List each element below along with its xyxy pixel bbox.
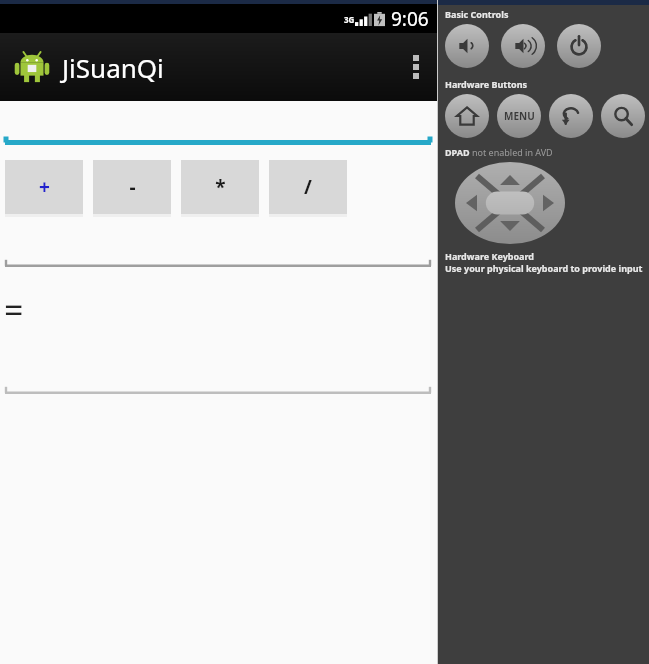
button[interactable]: - xyxy=(93,160,171,214)
staticText: - xyxy=(129,174,136,200)
button[interactable]: Volume up xyxy=(501,24,545,68)
button[interactable]: * xyxy=(181,160,259,214)
button[interactable]: Home xyxy=(445,94,489,138)
staticText: not enabled in AVD xyxy=(472,146,553,158)
staticText: Hardware Keyboard xyxy=(445,250,535,262)
button[interactable]: D-pad down xyxy=(493,222,527,244)
button[interactable]: Search xyxy=(601,94,645,138)
button[interactable]: D-pad select xyxy=(486,191,534,215)
button[interactable]: Menu xyxy=(497,94,541,138)
staticText: Hardware Buttons xyxy=(445,78,528,90)
button[interactable]: Power xyxy=(557,24,601,68)
button[interactable]: More options xyxy=(395,33,437,101)
button[interactable]: D-pad left xyxy=(455,188,481,218)
staticText: 9:06 xyxy=(391,6,429,32)
button[interactable]: Back xyxy=(549,94,593,138)
staticText: / xyxy=(304,174,312,200)
button[interactable]: Volume down xyxy=(445,24,489,68)
button[interactable]: D-pad right xyxy=(539,188,565,218)
staticText: 3G xyxy=(344,14,355,25)
button[interactable]: D-pad up xyxy=(493,162,527,184)
staticText: JiSuanQi xyxy=(62,50,164,85)
staticText: Basic Controls xyxy=(445,8,509,20)
staticText: * xyxy=(215,174,226,200)
staticText: = xyxy=(4,287,24,333)
staticText: DPAD xyxy=(445,146,472,158)
button[interactable] xyxy=(5,360,431,394)
button[interactable] xyxy=(5,233,431,267)
staticText: Use your physical keyboard to provide in… xyxy=(445,262,643,274)
button[interactable]: + xyxy=(5,160,83,214)
button[interactable] xyxy=(5,111,431,145)
staticText: + xyxy=(39,174,50,200)
staticText: MENU xyxy=(504,109,535,123)
button[interactable]: / xyxy=(269,160,347,214)
